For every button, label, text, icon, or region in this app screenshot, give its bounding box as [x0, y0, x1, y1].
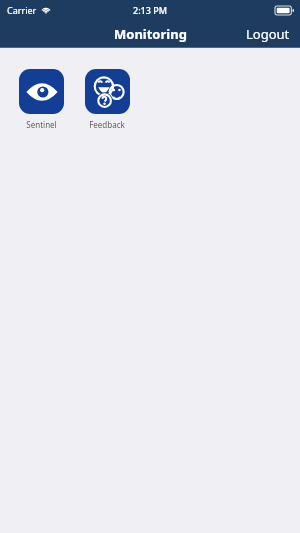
staticText: Carrier [7, 4, 37, 16]
staticText: Feedback [89, 119, 125, 130]
staticText: Logout [246, 25, 290, 43]
button[interactable]: Logout [236, 21, 300, 47]
other: Sentinel [25, 75, 59, 109]
button[interactable]: Sentinel [8, 67, 74, 132]
staticText: Sentinel [26, 119, 57, 130]
staticText: 2:13 PM [133, 4, 167, 16]
staticText: Monitoring [114, 25, 187, 43]
button[interactable]: Feedback [74, 67, 140, 132]
other: Feedback [91, 75, 125, 109]
